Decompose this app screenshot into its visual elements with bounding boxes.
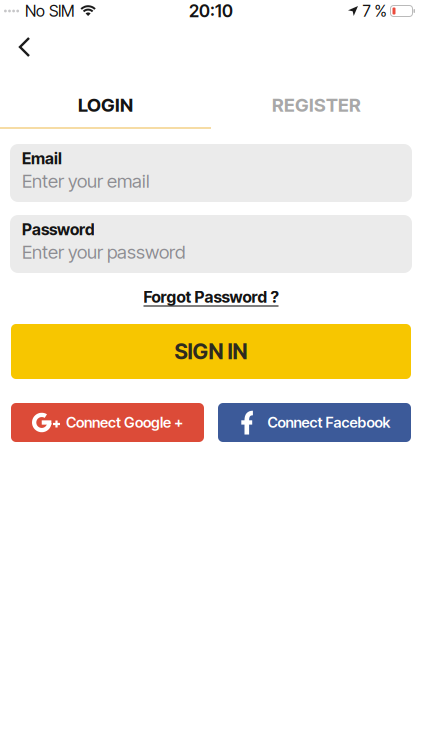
- staticText: Email: [22, 149, 62, 168]
- button[interactable]: Email, Enter your email: [0, 144, 422, 202]
- button[interactable]: Connect Facebook: [218, 403, 411, 442]
- button[interactable]: Password, Enter your password: [0, 215, 422, 273]
- button[interactable]: Back: [8, 33, 42, 61]
- staticText: Connect Facebook: [267, 414, 390, 431]
- staticText: 20:10: [189, 1, 233, 21]
- button[interactable]: LOGIN: [0, 83, 211, 127]
- staticText: Enter your password: [22, 241, 185, 263]
- staticText: Enter your email: [22, 170, 150, 192]
- button[interactable]: SIGN IN: [11, 324, 411, 379]
- staticText: Password: [22, 220, 95, 239]
- staticText: No SIM: [25, 2, 75, 20]
- staticText: LOGIN: [78, 94, 133, 116]
- staticText: SIGN IN: [174, 339, 247, 364]
- button[interactable]: Connect Google +: [11, 403, 204, 442]
- staticText: Connect Google +: [66, 414, 183, 431]
- button[interactable]: Forgot Password ?: [133, 287, 288, 307]
- staticText: Forgot Password ?: [143, 288, 278, 306]
- staticText: 7 %: [362, 2, 386, 20]
- button[interactable]: REGISTER: [211, 83, 422, 127]
- staticText: REGISTER: [272, 94, 361, 116]
